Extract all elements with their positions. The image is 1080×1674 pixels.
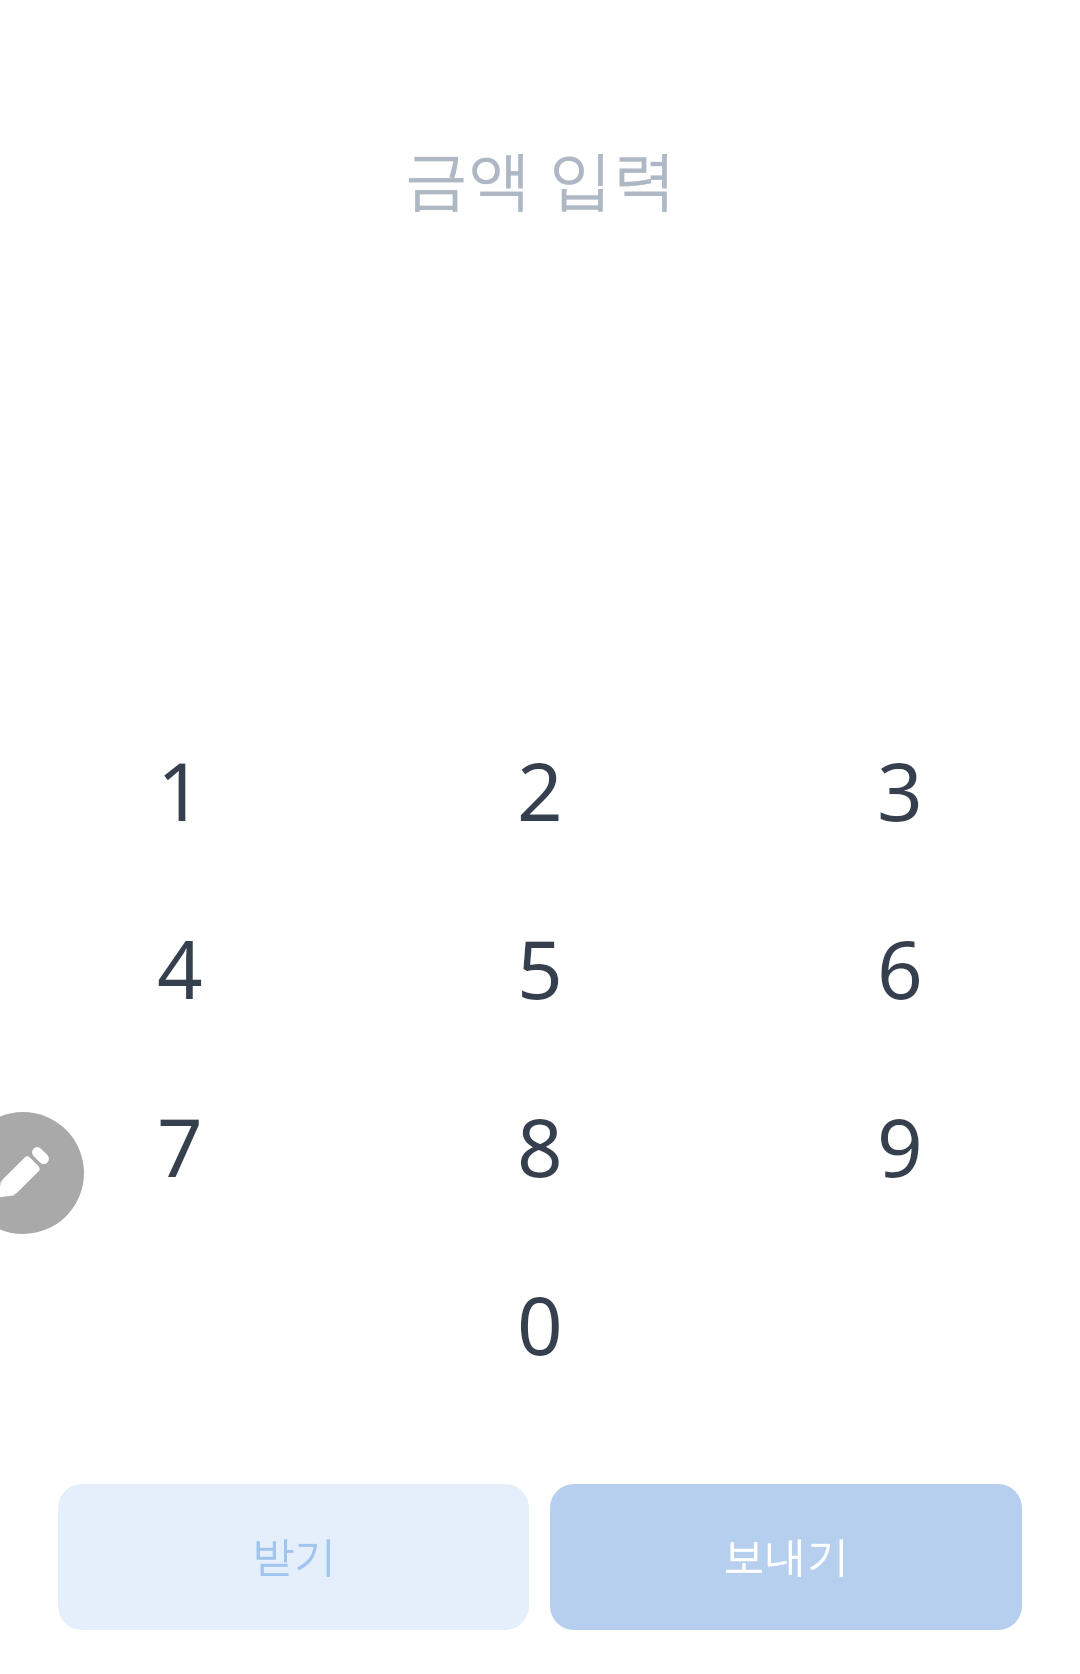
staticText: 2 <box>517 735 563 844</box>
staticText: 1 <box>157 735 203 844</box>
staticText: 8 <box>517 1091 563 1200</box>
staticText: 3 <box>877 735 923 844</box>
staticText: 5 <box>517 913 563 1022</box>
button[interactable]: 7 <box>0 1056 360 1234</box>
button[interactable]: 0 <box>360 1234 720 1412</box>
staticText: 4 <box>157 913 203 1022</box>
button[interactable]: 6 <box>720 878 1080 1056</box>
staticText: 받기 <box>252 1531 336 1584</box>
staticText: 보내기 <box>723 1531 849 1584</box>
staticText: 6 <box>877 913 923 1022</box>
button[interactable]: 1 <box>0 700 360 878</box>
button[interactable]: 3 <box>720 700 1080 878</box>
button[interactable]: 보내기 <box>550 1484 1022 1630</box>
button[interactable]: 2 <box>360 700 720 878</box>
button[interactable]: 5 <box>360 878 720 1056</box>
button[interactable]: Edit amount <box>0 1112 84 1234</box>
staticText: 0 <box>517 1269 563 1378</box>
staticText: 7 <box>157 1091 203 1200</box>
button[interactable]: 8 <box>360 1056 720 1234</box>
staticText: 9 <box>877 1091 923 1200</box>
button[interactable]: 9 <box>720 1056 1080 1234</box>
button[interactable]: 받기 <box>58 1484 529 1630</box>
button[interactable]: 4 <box>0 878 360 1056</box>
staticText: 금액 입력 <box>404 134 677 221</box>
